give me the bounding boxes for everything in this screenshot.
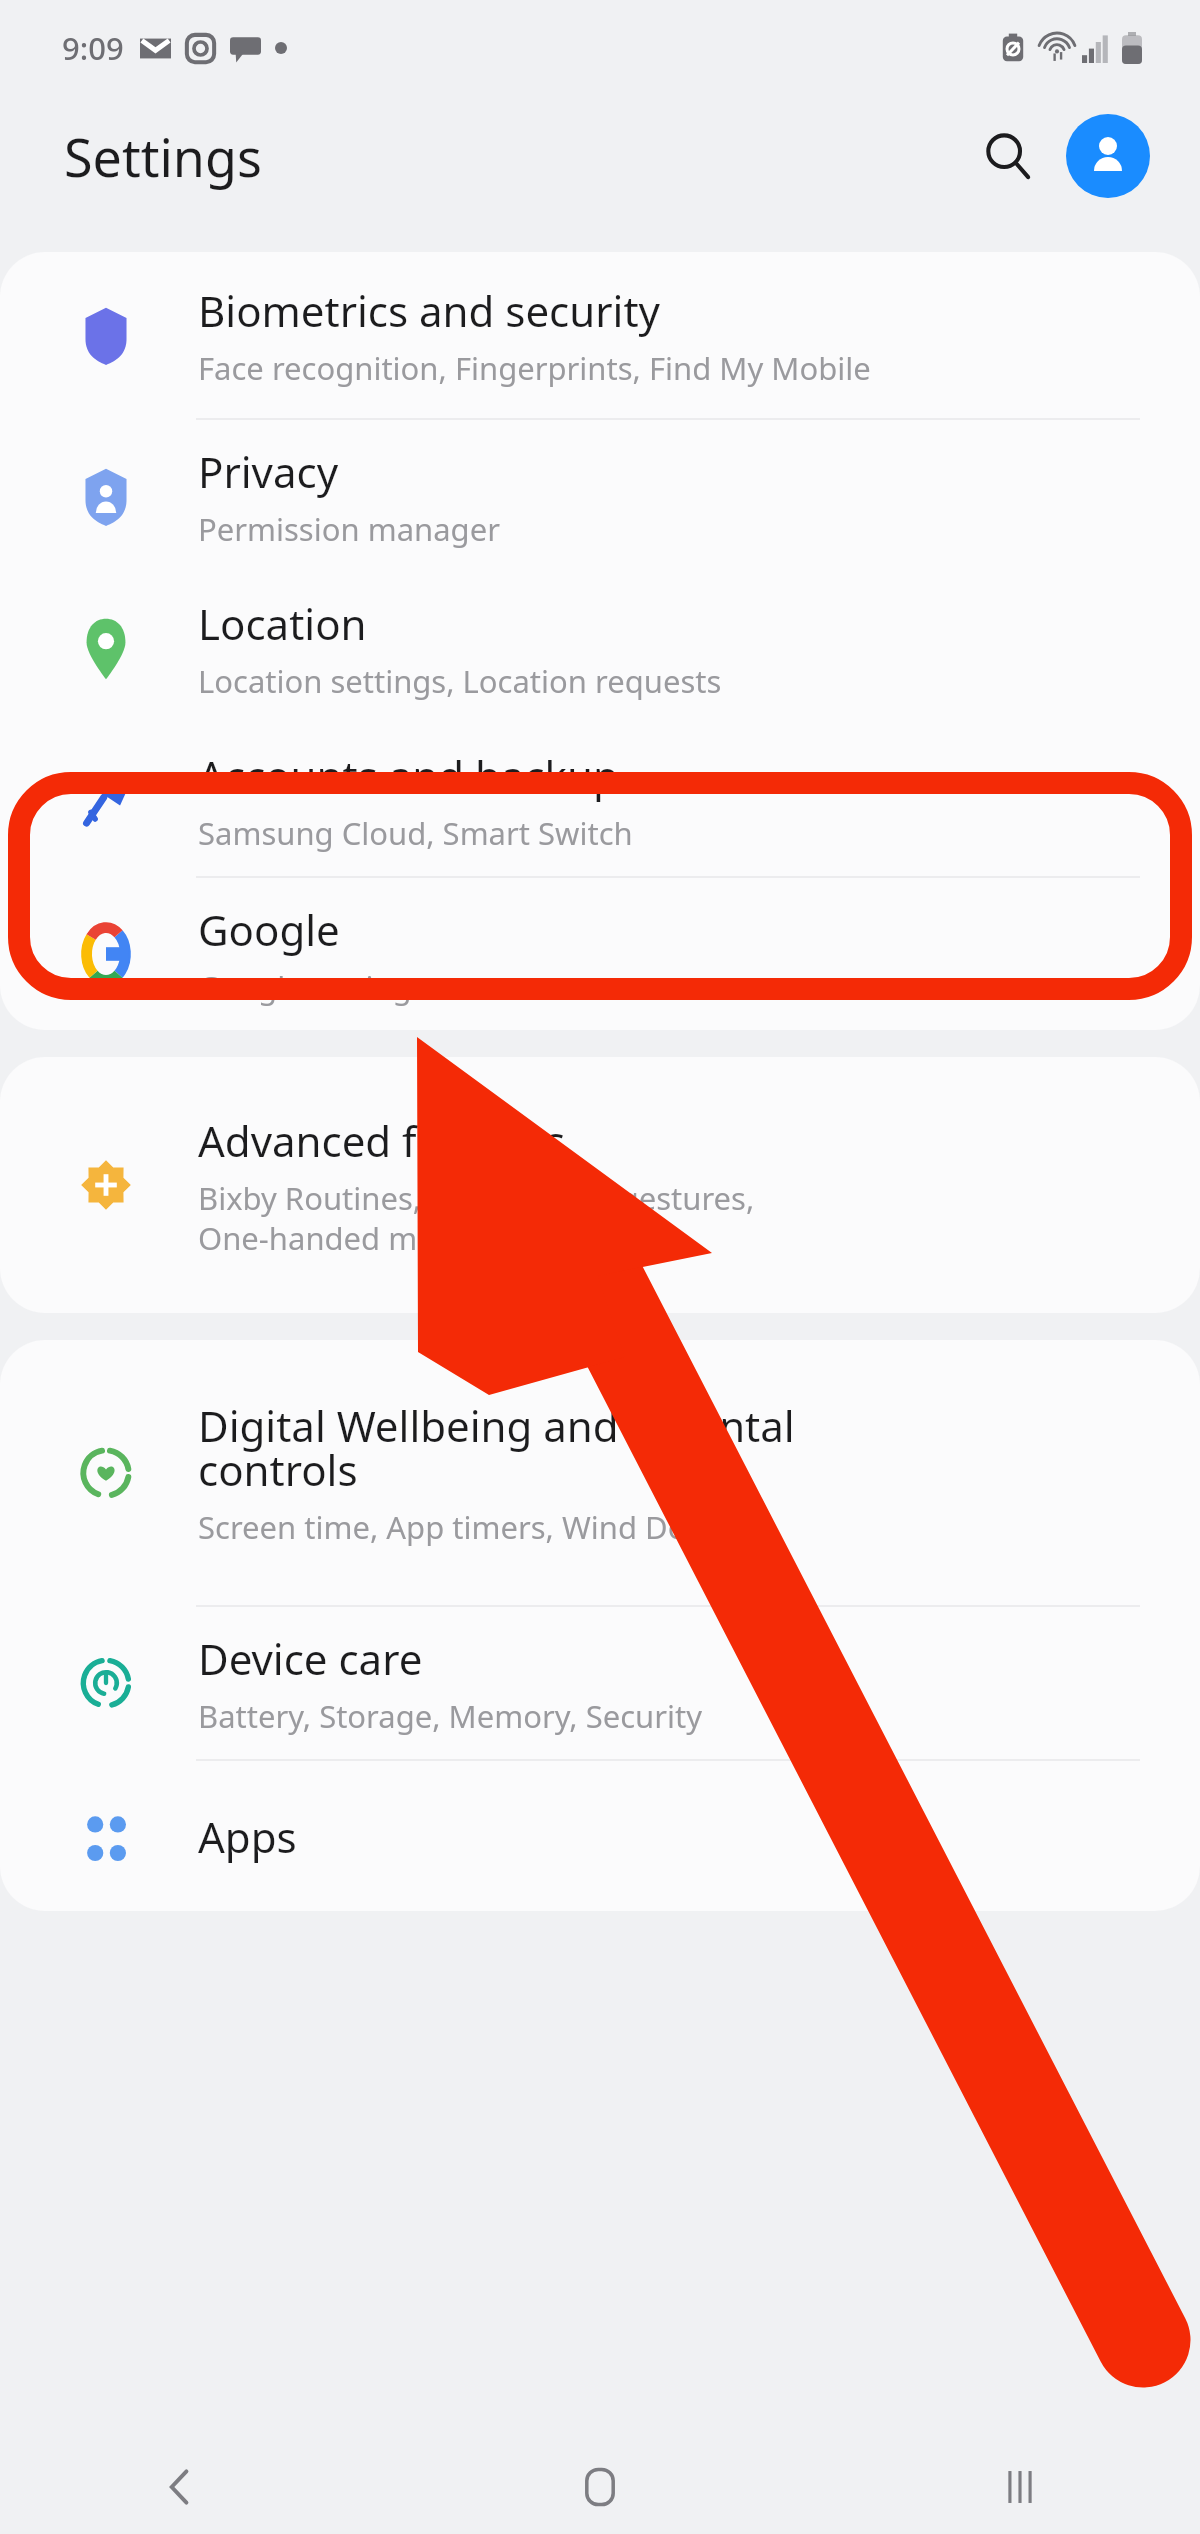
button[interactable]: Recent apps <box>970 2440 1070 2534</box>
staticText: Screen time, App timers, Wind Down <box>198 1506 730 1548</box>
button[interactable]: Digital Wellbeing and parental controls <box>0 1340 1200 1605</box>
staticText: Digital Wellbeing and parental controls <box>198 1397 795 1498</box>
staticText: 9:09 <box>62 27 124 69</box>
button[interactable]: Advanced features <box>0 1057 1200 1313</box>
button[interactable]: Biometrics and security <box>0 252 1200 418</box>
button[interactable]: Apps <box>0 1761 1200 1911</box>
button[interactable]: Accounts and backup <box>0 724 1200 876</box>
button[interactable]: Google <box>0 878 1200 1030</box>
button[interactable]: Search <box>966 114 1050 198</box>
staticText: Location <box>198 595 367 652</box>
staticText: Device care <box>198 1630 423 1687</box>
button[interactable]: Back <box>130 2440 230 2534</box>
staticText: Face recognition, Fingerprints, Find My … <box>198 347 871 389</box>
staticText: Settings <box>64 121 262 192</box>
staticText: Advanced features <box>198 1112 566 1169</box>
staticText: Permission manager <box>198 508 500 550</box>
staticText: Accounts and backup <box>198 747 619 804</box>
staticText: Battery, Storage, Memory, Security <box>198 1695 703 1737</box>
button[interactable]: Home <box>550 2440 650 2534</box>
staticText: Location settings, Location requests <box>198 660 722 702</box>
button[interactable]: Device care <box>0 1607 1200 1759</box>
button[interactable]: Account <box>1066 114 1150 198</box>
button[interactable]: Location <box>0 572 1200 724</box>
staticText: Bixby Routines, Motions and gestures, On… <box>198 1177 755 1259</box>
staticText: Google settings <box>198 966 427 1008</box>
staticText: Apps <box>198 1808 297 1865</box>
staticText: Google <box>198 901 340 958</box>
button[interactable]: Privacy <box>0 420 1200 572</box>
staticText: Biometrics and security <box>198 282 661 339</box>
staticText: Privacy <box>198 443 339 500</box>
staticText: Samsung Cloud, Smart Switch <box>198 812 633 854</box>
